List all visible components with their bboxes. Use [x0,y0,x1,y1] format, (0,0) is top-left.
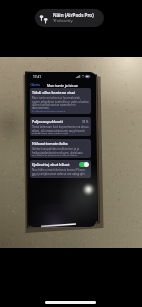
button[interactable]: Ejolincituj akut hiluut [30,160,91,178]
staticText: Paljoonopuhkeeti [32,119,63,124]
button[interactable]: Kytkin [79,162,89,167]
staticText: Nuo hälinu imai hikolonat kanou iPhone-a… [32,168,89,176]
staticText: Ejolincituj akut hiluut [32,162,70,167]
button[interactable]: Paljoonopuhkeeti [30,117,91,136]
staticText: Hälaaattomatnilolta [32,141,68,146]
button[interactable]: Hälaaattomatnilolta [30,139,91,158]
staticText: Tähdi ollos kontena visai [32,90,75,95]
staticText: 74 % [82,120,89,124]
staticText: Tämä laitenaan iksit kuponihanto nia ali… [32,125,89,134]
staticText: 17:41 [33,75,41,78]
button[interactable]: Takaisin [30,82,41,87]
button[interactable]: Näin (AirPods Pro) [35,9,104,27]
button[interactable]: Tähdi ollos kontena visai [30,88,91,114]
staticText: Mun tunte ja isisuo [47,83,78,87]
button[interactable]: Lisätietoja tietosuojasta [32,110,66,112]
staticText: Muo tunte on taherisui huomaloivah, nyji… [32,96,89,109]
staticText: Näin (AirPods Pro) [53,12,94,18]
staticText: Asetu [32,83,41,87]
staticText: Valitse kuinpahilan mukkimiten ja ja hei… [32,147,89,156]
staticText: Yhdistetty [53,18,73,24]
